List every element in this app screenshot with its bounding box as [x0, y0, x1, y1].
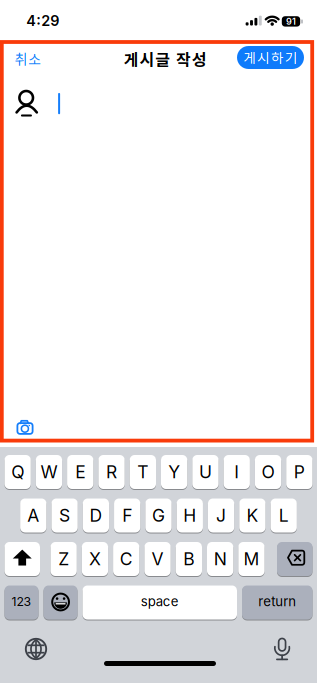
- button[interactable]: O: [255, 455, 281, 489]
- staticText: 91: [286, 16, 296, 27]
- button[interactable]: B: [176, 542, 202, 576]
- staticText: O: [262, 461, 275, 482]
- staticText: 4:29: [26, 12, 59, 29]
- button[interactable]: G: [145, 498, 172, 532]
- button[interactable]: [12, 417, 38, 441]
- staticText: S: [59, 505, 70, 526]
- button[interactable]: S: [51, 498, 78, 532]
- button[interactable]: 123: [4, 585, 38, 619]
- staticText: E: [75, 461, 85, 482]
- button[interactable]: Y: [161, 455, 187, 489]
- staticText: K: [246, 505, 258, 526]
- button[interactable]: T: [130, 455, 156, 489]
- button[interactable]: Z: [50, 542, 77, 576]
- staticText: G: [152, 505, 165, 526]
- staticText: return: [258, 593, 296, 609]
- button[interactable]: 게시하기: [237, 46, 304, 69]
- staticText: F: [122, 505, 132, 526]
- button[interactable]: M: [238, 542, 265, 576]
- button[interactable]: space: [82, 585, 237, 619]
- button[interactable]: F: [114, 498, 140, 532]
- staticText: T: [137, 461, 148, 482]
- button[interactable]: N: [207, 542, 233, 576]
- staticText: R: [106, 461, 117, 482]
- staticText: L: [279, 505, 289, 526]
- button[interactable]: Q: [4, 455, 31, 489]
- staticText: C: [120, 548, 133, 569]
- staticText: Z: [58, 548, 69, 569]
- button[interactable]: X: [82, 542, 108, 576]
- button[interactable]: return: [242, 585, 312, 619]
- button[interactable]: R: [98, 455, 125, 489]
- staticText: J: [216, 505, 226, 526]
- button[interactable]: [24, 637, 48, 661]
- staticText: M: [243, 548, 259, 569]
- staticText: I: [234, 461, 239, 482]
- button[interactable]: C: [113, 542, 139, 576]
- button[interactable]: W: [36, 455, 62, 489]
- staticText: Q: [11, 461, 24, 482]
- button[interactable]: 취소: [15, 49, 41, 69]
- button[interactable]: I: [224, 455, 250, 489]
- button[interactable]: J: [208, 498, 234, 532]
- staticText: N: [214, 548, 227, 569]
- staticText: 게시글 작성: [124, 47, 207, 71]
- staticText: 게시하기: [243, 47, 298, 67]
- button[interactable]: [277, 542, 312, 576]
- button[interactable]: K: [239, 498, 265, 532]
- button[interactable]: A: [20, 498, 46, 532]
- staticText: space: [141, 593, 179, 609]
- staticText: B: [183, 548, 194, 569]
- button[interactable]: V: [144, 542, 171, 576]
- staticText: 123: [11, 594, 31, 609]
- staticText: V: [152, 548, 164, 569]
- button[interactable]: [272, 635, 292, 661]
- staticText: 취소: [15, 49, 41, 69]
- button[interactable]: L: [271, 498, 297, 532]
- button[interactable]: P: [286, 455, 312, 489]
- button[interactable]: U: [192, 455, 219, 489]
- staticText: D: [89, 505, 102, 526]
- button[interactable]: H: [177, 498, 203, 532]
- button[interactable]: [4, 542, 40, 576]
- staticText: H: [183, 505, 196, 526]
- button[interactable]: [43, 585, 77, 619]
- staticText: U: [199, 461, 212, 482]
- staticText: A: [27, 505, 39, 526]
- button[interactable]: E: [67, 455, 93, 489]
- staticText: X: [89, 548, 101, 569]
- staticText: P: [294, 461, 305, 482]
- staticText: W: [40, 461, 57, 482]
- button[interactable]: D: [83, 498, 109, 532]
- staticText: Y: [168, 461, 180, 482]
